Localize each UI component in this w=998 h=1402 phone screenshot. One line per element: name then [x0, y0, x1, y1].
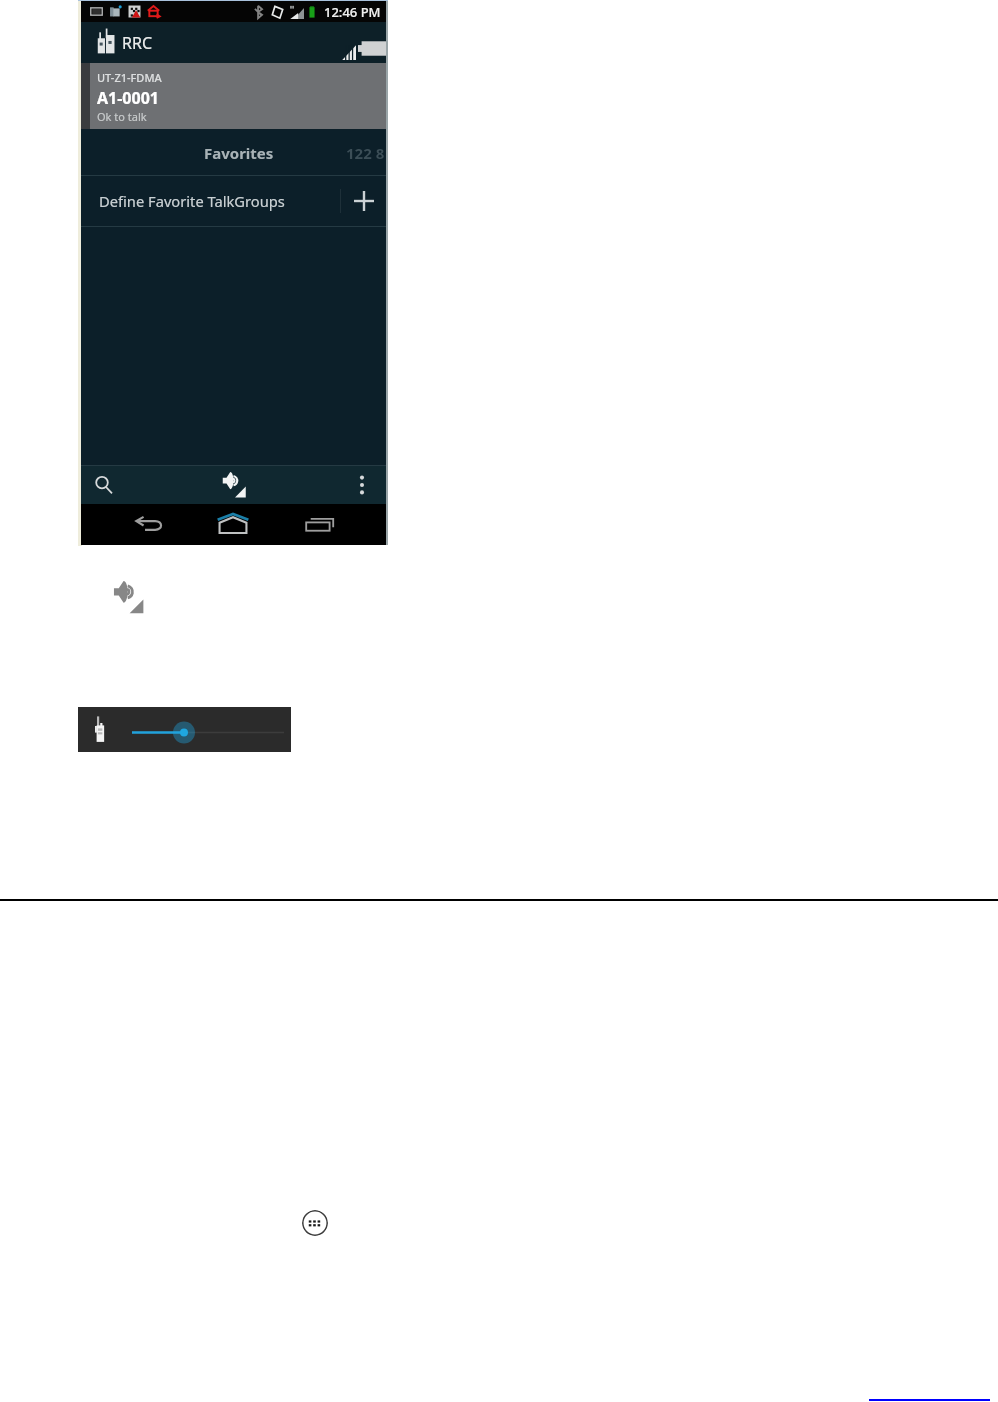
- staticText: A1-0001: [97, 87, 159, 109]
- button[interactable]: More options: [342, 466, 382, 504]
- staticText: RRC: [122, 32, 153, 54]
- button[interactable]: All apps: [302, 1210, 328, 1236]
- staticText: UT-Z1-FDMA: [97, 70, 162, 85]
- button[interactable]: Back: [81, 504, 182, 545]
- button[interactable]: Favorites: [81, 129, 386, 175]
- button[interactable]: Recents: [284, 504, 386, 545]
- button[interactable]: Radio volume slider: [78, 707, 291, 752]
- button[interactable]: Search: [81, 466, 127, 504]
- staticText: Favorites: [204, 143, 274, 163]
- button[interactable]: Home: [182, 504, 284, 545]
- button[interactable]: UT-Z1-FDMA: [81, 63, 386, 129]
- staticText: 12:46 PM: [324, 3, 381, 21]
- button[interactable]: Volume: [113, 581, 145, 614]
- button[interactable]: Define Favorite TalkGroups: [81, 176, 386, 226]
- button[interactable]: RRC: [81, 22, 191, 63]
- staticText: Define Favorite TalkGroups: [99, 191, 285, 211]
- button[interactable]: Volume: [204, 466, 264, 504]
- staticText: 122 8: [346, 143, 385, 163]
- button[interactable]: Add: [341, 176, 386, 226]
- staticText: Ok to talk: [97, 109, 147, 124]
